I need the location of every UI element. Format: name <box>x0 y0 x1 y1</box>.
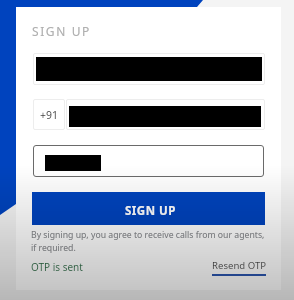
button[interactable]: SIGN UP <box>32 192 265 225</box>
button[interactable]: Resend OTP <box>212 259 267 276</box>
button[interactable] <box>66 99 265 130</box>
staticText: +91 <box>40 108 59 122</box>
button[interactable] <box>33 53 265 85</box>
staticText: SIGN UP <box>32 23 91 39</box>
staticText: OTP is sent <box>31 260 83 274</box>
staticText: SIGN UP <box>125 203 176 219</box>
staticText: By signing up, you agree to receive call… <box>31 229 265 254</box>
button[interactable] <box>33 145 264 177</box>
button[interactable]: +91 <box>33 99 65 130</box>
staticText: Resend OTP <box>212 259 267 272</box>
